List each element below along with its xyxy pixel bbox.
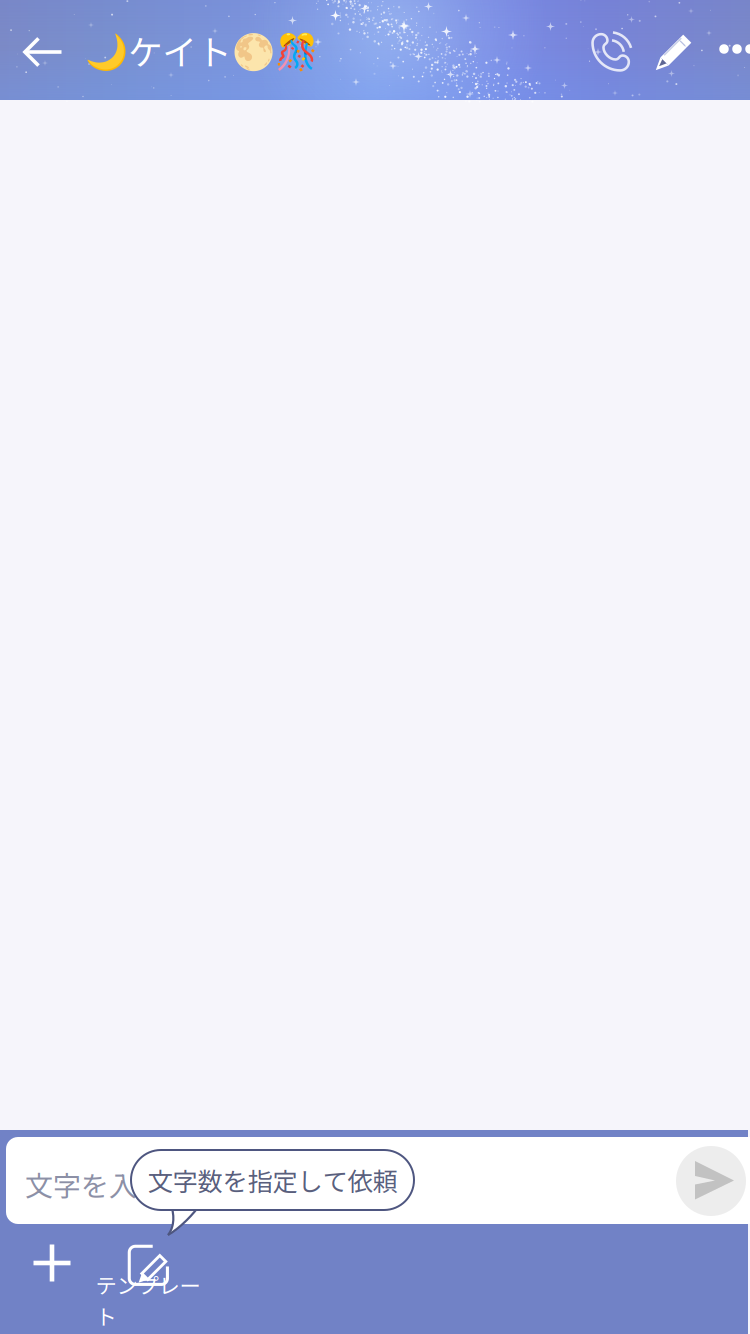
button[interactable]: Send bbox=[676, 1146, 746, 1216]
button[interactable]: Back bbox=[10, 19, 76, 85]
staticText: 文字を入力 bbox=[25, 1164, 165, 1204]
button[interactable]: Edit bbox=[645, 25, 695, 75]
staticText: 文字数を指定して依頼 bbox=[147, 1162, 397, 1198]
staticText: 🌙ケイト🌕🎊 bbox=[85, 25, 318, 75]
staticText: テンプレート bbox=[95, 1269, 200, 1331]
button[interactable]: Add attachment bbox=[15, 1226, 89, 1300]
button[interactable]: テンプレート bbox=[86, 1242, 210, 1316]
button[interactable]: More options bbox=[711, 23, 750, 75]
button[interactable]: Call bbox=[580, 21, 634, 75]
